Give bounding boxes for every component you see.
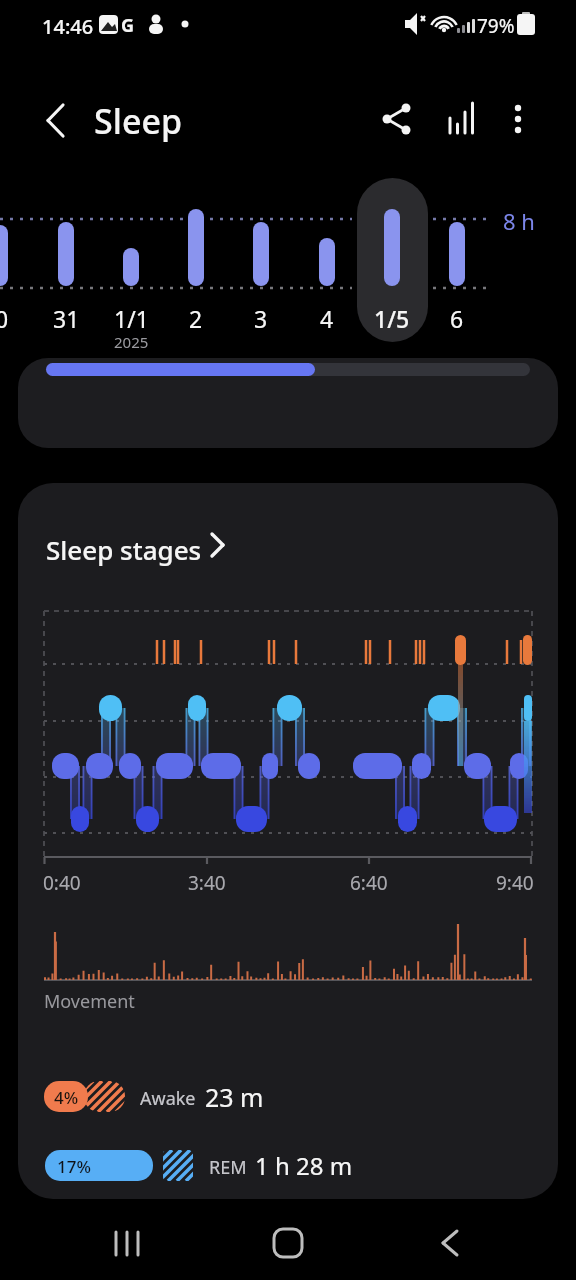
button[interactable]: [375, 96, 421, 142]
staticText: Awake: [140, 1086, 196, 1111]
staticText: 0: [0, 303, 9, 334]
staticText: 4%: [54, 1086, 79, 1109]
staticText: G: [121, 13, 135, 38]
button[interactable]: [0, 178, 576, 348]
staticText: REM: [209, 1155, 247, 1180]
staticText: 0:40: [43, 870, 81, 896]
staticText: 79%: [477, 13, 515, 39]
staticText: 9:40: [496, 870, 534, 896]
staticText: 3: [254, 303, 268, 334]
button[interactable]: [38, 1073, 338, 1118]
staticText: 8 h: [503, 206, 535, 236]
staticText: 23 m: [205, 1080, 264, 1114]
staticText: 4: [320, 303, 334, 334]
staticText: Sleep stages: [46, 532, 202, 567]
button[interactable]: [498, 96, 538, 136]
staticText: 1 h 28 m: [255, 1149, 353, 1182]
button[interactable]: [38, 1143, 378, 1188]
staticText: 2025: [114, 332, 149, 352]
staticText: 3:40: [188, 870, 226, 896]
staticText: Sleep: [94, 98, 182, 144]
staticText: 1/5: [374, 303, 410, 334]
staticText: 17%: [57, 1155, 91, 1178]
button[interactable]: [102, 1218, 152, 1268]
staticText: 6:40: [350, 870, 388, 896]
staticText: 6: [450, 303, 464, 334]
button[interactable]: [30, 95, 80, 145]
staticText: 2: [189, 303, 203, 334]
staticText: 1/1: [114, 303, 149, 334]
button[interactable]: [46, 513, 266, 553]
button[interactable]: [263, 1218, 313, 1268]
button[interactable]: [425, 1218, 475, 1268]
staticText: 14:46: [42, 13, 94, 40]
button[interactable]: Sleep: [94, 98, 182, 144]
button[interactable]: [440, 96, 486, 142]
staticText: Movement: [44, 989, 135, 1014]
button[interactable]: [18, 358, 558, 448]
staticText: 31: [53, 303, 80, 334]
